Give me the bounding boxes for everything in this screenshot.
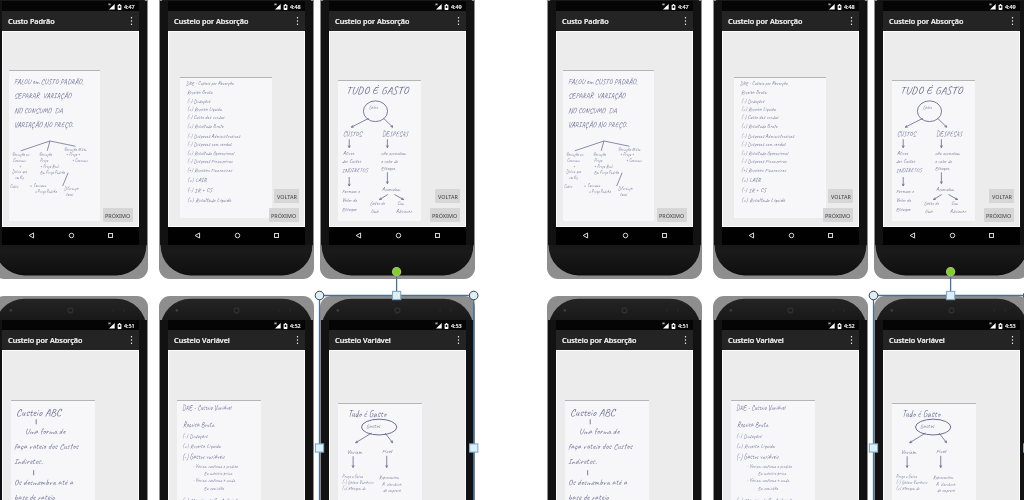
staticText: da empresa <box>383 488 401 494</box>
staticText: (-) Gastos Variáveis <box>896 480 928 486</box>
staticText: x Preço Padrão <box>35 189 57 194</box>
staticText: + Consumo <box>72 158 88 163</box>
button[interactable]: VOLTAR <box>989 189 1014 203</box>
staticText: 4:52 <box>290 322 301 329</box>
staticText: Preço <box>40 158 48 163</box>
button[interactable]: More options <box>452 330 465 350</box>
button[interactable]: More options <box>845 11 858 31</box>
staticText: Ex: comissão <box>204 486 224 492</box>
button[interactable]: Custeio por Absorção <box>556 330 693 350</box>
staticText: (-) Gastos variáveis <box>182 453 225 461</box>
button[interactable]: PRÓXIMO <box>823 208 853 222</box>
button[interactable]: Back <box>740 227 762 244</box>
button[interactable]: PRÓXIMO <box>984 208 1014 222</box>
staticText: DRE - Custeio Variável <box>182 404 232 412</box>
staticText: (-) Deduções <box>182 432 208 440</box>
button[interactable]: Home <box>614 227 636 244</box>
staticText: Estoque. <box>935 165 950 172</box>
button[interactable]: PRÓXIMO <box>269 208 299 222</box>
button[interactable]: Custo Padrão <box>556 11 693 31</box>
staticText: Desvio que <box>12 169 27 174</box>
staticText: SEPARAR VARIAÇÃO <box>568 91 626 100</box>
staticText: da empresa <box>937 488 955 494</box>
button[interactable]: Back <box>347 227 369 244</box>
staticText: faça rateio dos Custos <box>14 441 79 452</box>
button[interactable]: More options <box>125 11 138 31</box>
button[interactable]: Recents <box>99 227 121 244</box>
staticText: DESPESAS <box>936 130 963 138</box>
button[interactable]: Custeio Variável <box>883 330 1020 350</box>
button[interactable]: Custeio por Absorção <box>168 11 305 31</box>
button[interactable]: Home <box>780 227 802 244</box>
button[interactable]: Back <box>20 227 42 244</box>
staticText: PRÓXIMO <box>659 212 685 219</box>
staticText: Receita Bruta <box>737 421 769 429</box>
staticText: INDIRETOS <box>342 166 368 173</box>
button[interactable]: Recents <box>265 227 287 244</box>
staticText: Indiretos. <box>14 456 43 467</box>
button[interactable]: Home <box>941 227 963 244</box>
button[interactable]: Recents <box>819 227 841 244</box>
staticText: Variação no <box>566 152 584 157</box>
button[interactable]: More options <box>125 330 138 350</box>
button[interactable]: Custo Padrão <box>2 11 139 31</box>
button[interactable]: Home <box>387 227 409 244</box>
staticText: Uma forma de <box>579 426 620 437</box>
staticText: Gastos <box>920 422 935 430</box>
staticText: Receita Bruta <box>183 421 215 429</box>
staticText: Ex: matéria-prima <box>758 471 787 477</box>
staticText: VARIAÇÃO NO PREÇO. <box>14 120 74 129</box>
button[interactable]: Home <box>226 227 248 244</box>
button[interactable]: Back <box>901 227 923 244</box>
staticText: + Preço + <box>66 152 80 157</box>
staticText: (-) Despesas Financeiras <box>187 158 233 165</box>
button[interactable]: More options <box>679 11 692 31</box>
staticText: (=) Receita Líquida <box>736 442 775 450</box>
button[interactable]: VOLTAR <box>828 189 853 203</box>
button[interactable]: Custeio por Absorção <box>329 11 466 31</box>
button[interactable]: Recents <box>653 227 675 244</box>
button[interactable]: VOLTAR <box>435 189 460 203</box>
staticText: (=) Margem de <box>342 486 366 492</box>
staticText: 4:48 <box>290 3 301 10</box>
button[interactable]: Custeio por Absorção <box>883 11 1020 31</box>
button[interactable]: Custeio por Absorção <box>722 11 859 31</box>
staticText: Diferença <box>618 186 633 191</box>
staticText: Formam o <box>896 188 914 195</box>
button[interactable]: More options <box>679 330 692 350</box>
staticText: + <box>19 164 21 169</box>
button[interactable]: More options <box>1006 11 1019 31</box>
button[interactable]: PRÓXIMO <box>657 208 687 222</box>
staticText: Custeio Variável <box>889 335 945 345</box>
staticText: Uma <box>925 208 933 214</box>
staticText: o valor do <box>935 158 952 165</box>
staticText: faça rateio dos Custos <box>568 441 633 452</box>
button[interactable]: Custeio Variável <box>329 330 466 350</box>
button[interactable]: More options <box>1006 330 1019 350</box>
staticText: Preço <box>594 158 602 163</box>
button[interactable]: Custeio por Absorção <box>2 330 139 350</box>
button[interactable]: Custeio Variável <box>722 330 859 350</box>
button[interactable]: PRÓXIMO <box>103 208 133 222</box>
staticText: Os desmembra até a <box>14 477 73 488</box>
button[interactable]: More options <box>452 11 465 31</box>
button[interactable]: More options <box>291 11 304 31</box>
button[interactable]: VOLTAR <box>274 189 299 203</box>
button[interactable]: PRÓXIMO <box>430 208 460 222</box>
staticText: - Variam conforme a venda <box>193 478 236 484</box>
button[interactable]: Back <box>186 227 208 244</box>
staticText: 4:53 <box>1005 322 1016 329</box>
staticText: (-) Deduções <box>736 432 762 440</box>
button[interactable]: Back <box>574 227 596 244</box>
button[interactable]: Home <box>60 227 82 244</box>
staticText: Custeio por Absorção <box>174 16 249 26</box>
button[interactable]: More options <box>291 330 304 350</box>
button[interactable]: Recents <box>426 227 448 244</box>
button[interactable]: More options <box>845 330 858 350</box>
staticText: Gasto <box>369 105 378 111</box>
button[interactable]: Custeio Variável <box>168 330 305 350</box>
button[interactable]: Recents <box>980 227 1002 244</box>
staticText: (=) Receita Líquida <box>187 106 222 113</box>
staticText: (=) Receita Líquida <box>182 442 221 450</box>
staticText: Uma <box>371 208 379 214</box>
